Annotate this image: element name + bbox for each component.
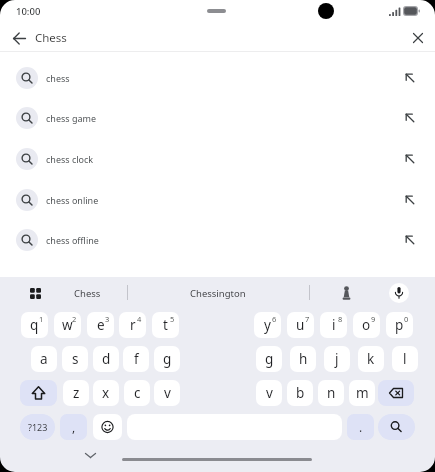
- staticText: p: [395, 316, 404, 334]
- staticText: 8: [338, 314, 343, 324]
- button[interactable]: [405, 26, 431, 50]
- button[interactable]: n: [318, 380, 344, 406]
- button[interactable]: o: [353, 312, 380, 338]
- button[interactable]: chess game: [0, 97, 435, 138]
- button[interactable]: t: [152, 312, 179, 338]
- button[interactable]: g: [154, 346, 180, 372]
- staticText: h: [299, 350, 308, 368]
- staticText: chess: [46, 72, 70, 84]
- staticText: .: [359, 419, 363, 435]
- staticText: 9: [371, 314, 376, 324]
- staticText: v: [266, 384, 273, 402]
- staticText: t: [163, 316, 168, 334]
- button[interactable]: l: [392, 346, 418, 372]
- staticText: b: [296, 384, 305, 402]
- staticText: s: [72, 350, 79, 368]
- staticText: d: [102, 350, 111, 368]
- button[interactable]: [80, 449, 100, 461]
- button[interactable]: a: [31, 346, 57, 372]
- button[interactable]: m: [349, 380, 375, 406]
- button[interactable]: d: [93, 346, 119, 372]
- button[interactable]: g: [256, 346, 282, 372]
- button[interactable]: Chessington: [130, 282, 306, 304]
- staticText: Chessington: [190, 287, 246, 300]
- button[interactable]: w: [54, 312, 81, 338]
- button[interactable]: i: [320, 312, 347, 338]
- button[interactable]: k: [358, 346, 384, 372]
- staticText: j: [335, 350, 339, 368]
- staticText: 4: [137, 314, 142, 324]
- button[interactable]: [378, 414, 415, 440]
- staticText: Chess: [35, 30, 67, 46]
- staticText: w: [62, 316, 73, 334]
- staticText: chess online: [46, 194, 99, 206]
- button[interactable]: e: [87, 312, 114, 338]
- button[interactable]: Chess: [50, 282, 124, 304]
- staticText: u: [296, 316, 305, 334]
- button[interactable]: [389, 283, 409, 303]
- button[interactable]: v: [256, 380, 282, 406]
- staticText: a: [40, 350, 48, 368]
- button[interactable]: [378, 380, 414, 406]
- staticText: n: [327, 384, 336, 402]
- staticText: r: [130, 316, 136, 334]
- button[interactable]: j: [324, 346, 350, 372]
- button[interactable]: .: [347, 414, 374, 440]
- button[interactable]: ?123: [20, 414, 55, 440]
- button[interactable]: [6, 26, 32, 50]
- staticText: q: [30, 316, 39, 334]
- staticText: 7: [305, 314, 310, 324]
- button[interactable]: [22, 282, 48, 304]
- button[interactable]: y: [254, 312, 281, 338]
- staticText: 0: [404, 314, 409, 324]
- staticText: k: [367, 350, 375, 368]
- button[interactable]: p: [386, 312, 413, 338]
- staticText: chess clock: [46, 153, 94, 165]
- button[interactable]: chess clock: [0, 138, 435, 179]
- staticText: i: [332, 316, 336, 334]
- staticText: z: [73, 384, 80, 402]
- staticText: chess offline: [46, 234, 99, 246]
- staticText: 2: [72, 314, 77, 324]
- staticText: e: [97, 316, 105, 334]
- button[interactable]: s: [62, 346, 88, 372]
- button[interactable]: h: [290, 346, 316, 372]
- staticText: v: [164, 384, 171, 402]
- staticText: c: [134, 384, 141, 402]
- staticText: 5: [170, 314, 175, 324]
- staticText: m: [356, 384, 369, 402]
- button[interactable]: x: [93, 380, 119, 406]
- staticText: x: [102, 384, 110, 402]
- staticText: y: [264, 316, 271, 334]
- button[interactable]: [93, 414, 122, 440]
- button[interactable]: u: [287, 312, 314, 338]
- button[interactable]: chess: [0, 57, 435, 98]
- staticText: ,: [72, 419, 76, 435]
- button[interactable]: f: [123, 346, 149, 372]
- staticText: ?123: [28, 421, 48, 433]
- staticText: 3: [105, 314, 110, 324]
- staticText: 1: [39, 314, 44, 324]
- staticText: g: [265, 350, 274, 368]
- staticText: 6: [272, 314, 277, 324]
- button[interactable]: [20, 380, 57, 406]
- button[interactable]: ,: [60, 414, 87, 440]
- button[interactable]: z: [63, 380, 89, 406]
- staticText: o: [362, 316, 371, 334]
- button[interactable]: [336, 283, 356, 303]
- staticText: l: [403, 350, 407, 368]
- staticText: f: [134, 350, 139, 368]
- button[interactable]: b: [287, 380, 313, 406]
- button[interactable]: chess offline: [0, 219, 435, 260]
- staticText: Chess: [74, 287, 101, 300]
- button[interactable]: r: [119, 312, 146, 338]
- button[interactable]: c: [124, 380, 150, 406]
- staticText: g: [163, 350, 172, 368]
- button[interactable]: v: [154, 380, 180, 406]
- button[interactable]: chess online: [0, 179, 435, 220]
- staticText: chess game: [46, 112, 96, 124]
- button[interactable]: q: [21, 312, 48, 338]
- staticText: 10:00: [16, 5, 41, 18]
